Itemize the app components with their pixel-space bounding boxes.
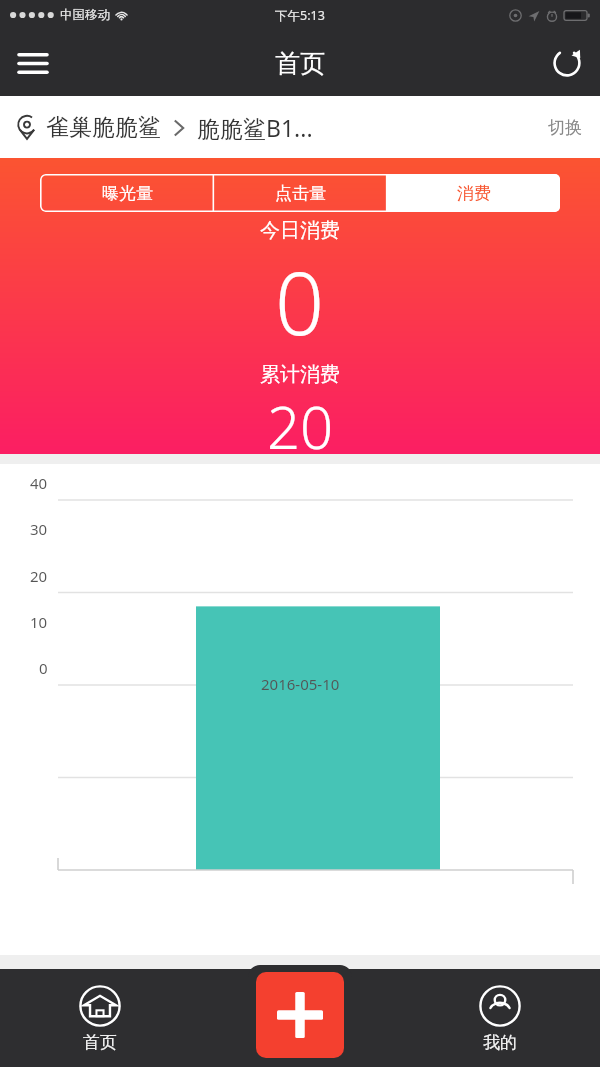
staticText: 10 — [30, 612, 48, 632]
staticText: 雀巢脆脆鲨 — [46, 113, 161, 142]
button[interactable]: Refresh — [534, 30, 600, 96]
staticText: 中国移动 — [60, 7, 110, 23]
staticText: 消费 — [457, 183, 491, 204]
staticText: 曝光量 — [102, 183, 153, 204]
staticText: 我的 — [483, 1032, 517, 1053]
staticText: 40 — [30, 473, 48, 493]
button[interactable]: 点击量 — [214, 174, 387, 212]
button[interactable]: 雀巢脆脆鲨 — [16, 112, 313, 143]
button[interactable]: 曝光量 — [40, 174, 214, 212]
staticText: 首页 — [83, 1032, 117, 1053]
staticText: 0 — [39, 658, 48, 678]
button[interactable]: 消费 — [387, 174, 560, 212]
staticText: 30 — [30, 519, 48, 539]
button[interactable]: Add — [256, 972, 344, 1058]
staticText: 今日消费 — [260, 218, 340, 243]
staticText: 2016-05-10 — [261, 674, 340, 694]
button[interactable]: 首页 — [0, 976, 200, 1061]
staticText: 0 — [275, 243, 325, 360]
staticText: 累计消费 — [260, 362, 340, 387]
staticText: 20 — [267, 387, 334, 454]
staticText: 下午5:13 — [275, 7, 325, 24]
staticText: 点击量 — [275, 183, 326, 204]
staticText: 20 — [30, 566, 48, 586]
button[interactable]: 我的 — [400, 976, 600, 1061]
staticText: 脆脆鲨B1... — [197, 112, 313, 143]
staticText: 切换 — [548, 117, 582, 138]
button[interactable]: Menu — [0, 30, 66, 96]
staticText: 首页 — [275, 48, 325, 79]
button[interactable]: 切换 — [530, 105, 600, 150]
